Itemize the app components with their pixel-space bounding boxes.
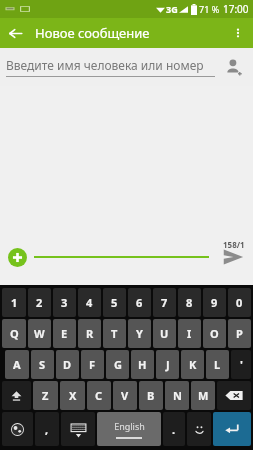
button[interactable]: Enter [213,412,251,446]
button[interactable] [34,256,213,258]
staticText: Y [136,326,143,341]
staticText: 8 [186,295,193,310]
staticText: 5 [111,295,118,310]
button[interactable]: , [35,412,59,446]
button[interactable]: Back [0,18,30,48]
staticText: 0 [236,295,243,310]
button[interactable]: 4 [78,288,101,317]
button[interactable]: M [191,381,215,410]
button[interactable]: D [56,350,79,379]
button[interactable]: S [31,350,54,379]
button[interactable]: F [81,350,104,379]
staticText: B [147,388,155,403]
button[interactable]: 1 [2,288,26,317]
staticText: 3G [166,3,178,15]
button[interactable]: N [165,381,189,410]
staticText: 1 [11,295,18,310]
staticText: E [61,326,68,341]
staticText: X [69,388,77,403]
button[interactable]: W [28,319,51,348]
staticText: 9 [211,295,218,310]
button[interactable]: P [228,319,251,348]
staticText: S [39,357,46,372]
staticText: T [111,326,118,341]
staticText: Z [42,388,49,403]
staticText: , [45,422,49,437]
button[interactable]: Q [2,319,26,348]
button[interactable]: Add attachment [0,240,34,274]
staticText: 6 [136,295,143,310]
staticText: 4 [86,295,93,310]
button[interactable]: English [97,412,161,446]
staticText: F [89,357,96,372]
staticText: G [114,357,122,372]
staticText: K [189,357,197,372]
staticText: 158/1 [223,239,245,250]
button[interactable]: Shift [2,381,31,410]
button[interactable]: Add contact [215,48,253,86]
staticText: U [160,326,169,341]
staticText: A [13,357,21,372]
staticText: Введите имя человека или номер [6,57,204,73]
button[interactable]: 0 [228,288,251,317]
staticText: Q [10,326,19,341]
staticText: R [86,326,94,341]
staticText: 17:00 [223,2,249,16]
staticText: J [166,357,170,372]
staticText: ' [240,357,243,372]
staticText: 3 [61,295,68,310]
button[interactable]: B [139,381,163,410]
staticText: 2 [36,295,43,310]
staticText: M [198,388,209,403]
staticText: W [34,326,45,341]
staticText: . [172,422,176,437]
staticText: N [173,388,182,403]
button[interactable]: Введите имя человека или номер [6,57,215,77]
button[interactable]: 6 [128,288,151,317]
button[interactable]: X [60,381,85,410]
button[interactable]: C [87,381,111,410]
staticText: P [236,326,243,341]
button[interactable]: 9 [203,288,226,317]
button[interactable]: 7 [153,288,176,317]
button[interactable]: 5 [103,288,126,317]
staticText: Новое сообщение [35,24,150,42]
staticText: I [187,326,192,341]
button[interactable]: A [5,350,29,379]
button[interactable]: 3 [53,288,76,317]
button[interactable]: . [163,412,185,446]
button[interactable]: U [153,319,176,348]
button[interactable]: Z [33,381,58,410]
staticText: O [210,326,219,341]
staticText: C [95,388,103,403]
staticText: D [63,357,72,372]
button[interactable]: Y [128,319,151,348]
button[interactable]: L [206,350,229,379]
button[interactable]: K [181,350,204,379]
button[interactable]: T [103,319,126,348]
staticText: H [138,357,147,372]
staticText: 7 [161,295,168,310]
button[interactable]: 8 [178,288,201,317]
button[interactable]: I [178,319,201,348]
button[interactable]: G [106,350,129,379]
button[interactable]: More options [223,18,253,48]
button[interactable]: R [78,319,101,348]
staticText: 71 % [199,3,220,15]
button[interactable]: E [53,319,76,348]
button[interactable]: H [131,350,154,379]
button[interactable]: Emoji [187,412,211,446]
staticText: English [114,420,145,432]
button[interactable]: Change language [2,412,33,446]
staticText: L [214,357,221,372]
button[interactable]: O [203,319,226,348]
button[interactable]: Send [213,237,253,277]
button[interactable]: J [156,350,179,379]
staticText: V [121,388,129,403]
button[interactable]: 2 [28,288,51,317]
button[interactable]: V [113,381,137,410]
button[interactable]: ' [231,350,251,379]
button[interactable]: Switch keyboard [61,412,95,446]
button[interactable]: Backspace [217,381,251,410]
